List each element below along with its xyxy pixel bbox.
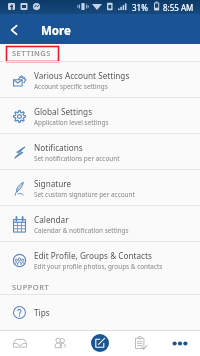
staticText: Tips [34,307,50,318]
button[interactable]: Tasks [120,330,160,356]
staticText: Calendar & notification settings [34,226,129,235]
button[interactable]: Compose [91,334,109,352]
staticText: Notifications [34,142,83,153]
staticText: Set notifications per account [34,154,120,163]
button[interactable]: Signature [0,170,200,206]
staticText: More [41,23,71,39]
staticText: SUPPORT [12,282,50,292]
staticText: SETTINGS [12,48,51,58]
staticText: Signature [34,178,72,189]
button[interactable]: Various Account Settings [0,62,200,98]
button[interactable]: Back [0,16,27,43]
staticText: 31% [132,2,148,13]
staticText: 8:55 AM [163,2,194,13]
button[interactable]: Contacts [40,330,80,356]
button[interactable]: Tips [0,295,200,330]
staticText: Various Account Settings [34,70,130,81]
button[interactable]: Inbox [0,330,40,356]
button[interactable]: Notifications [0,134,200,170]
staticText: Global Settings [34,106,93,117]
staticText: Application level settings [34,118,109,127]
staticText: Edit Profile, Groups & Contacts [34,250,152,261]
staticText: Set custom signature per account [34,190,135,199]
staticText: Account specific settings [34,82,108,91]
button[interactable]: Calendar [0,206,200,242]
staticText: Calendar [34,214,69,225]
staticText: Edit your profile photos, groups & conta… [34,262,163,271]
button[interactable]: More [160,330,200,356]
button[interactable]: Edit Profile, Groups & Contacts [0,242,200,278]
button[interactable]: Global Settings [0,98,200,134]
